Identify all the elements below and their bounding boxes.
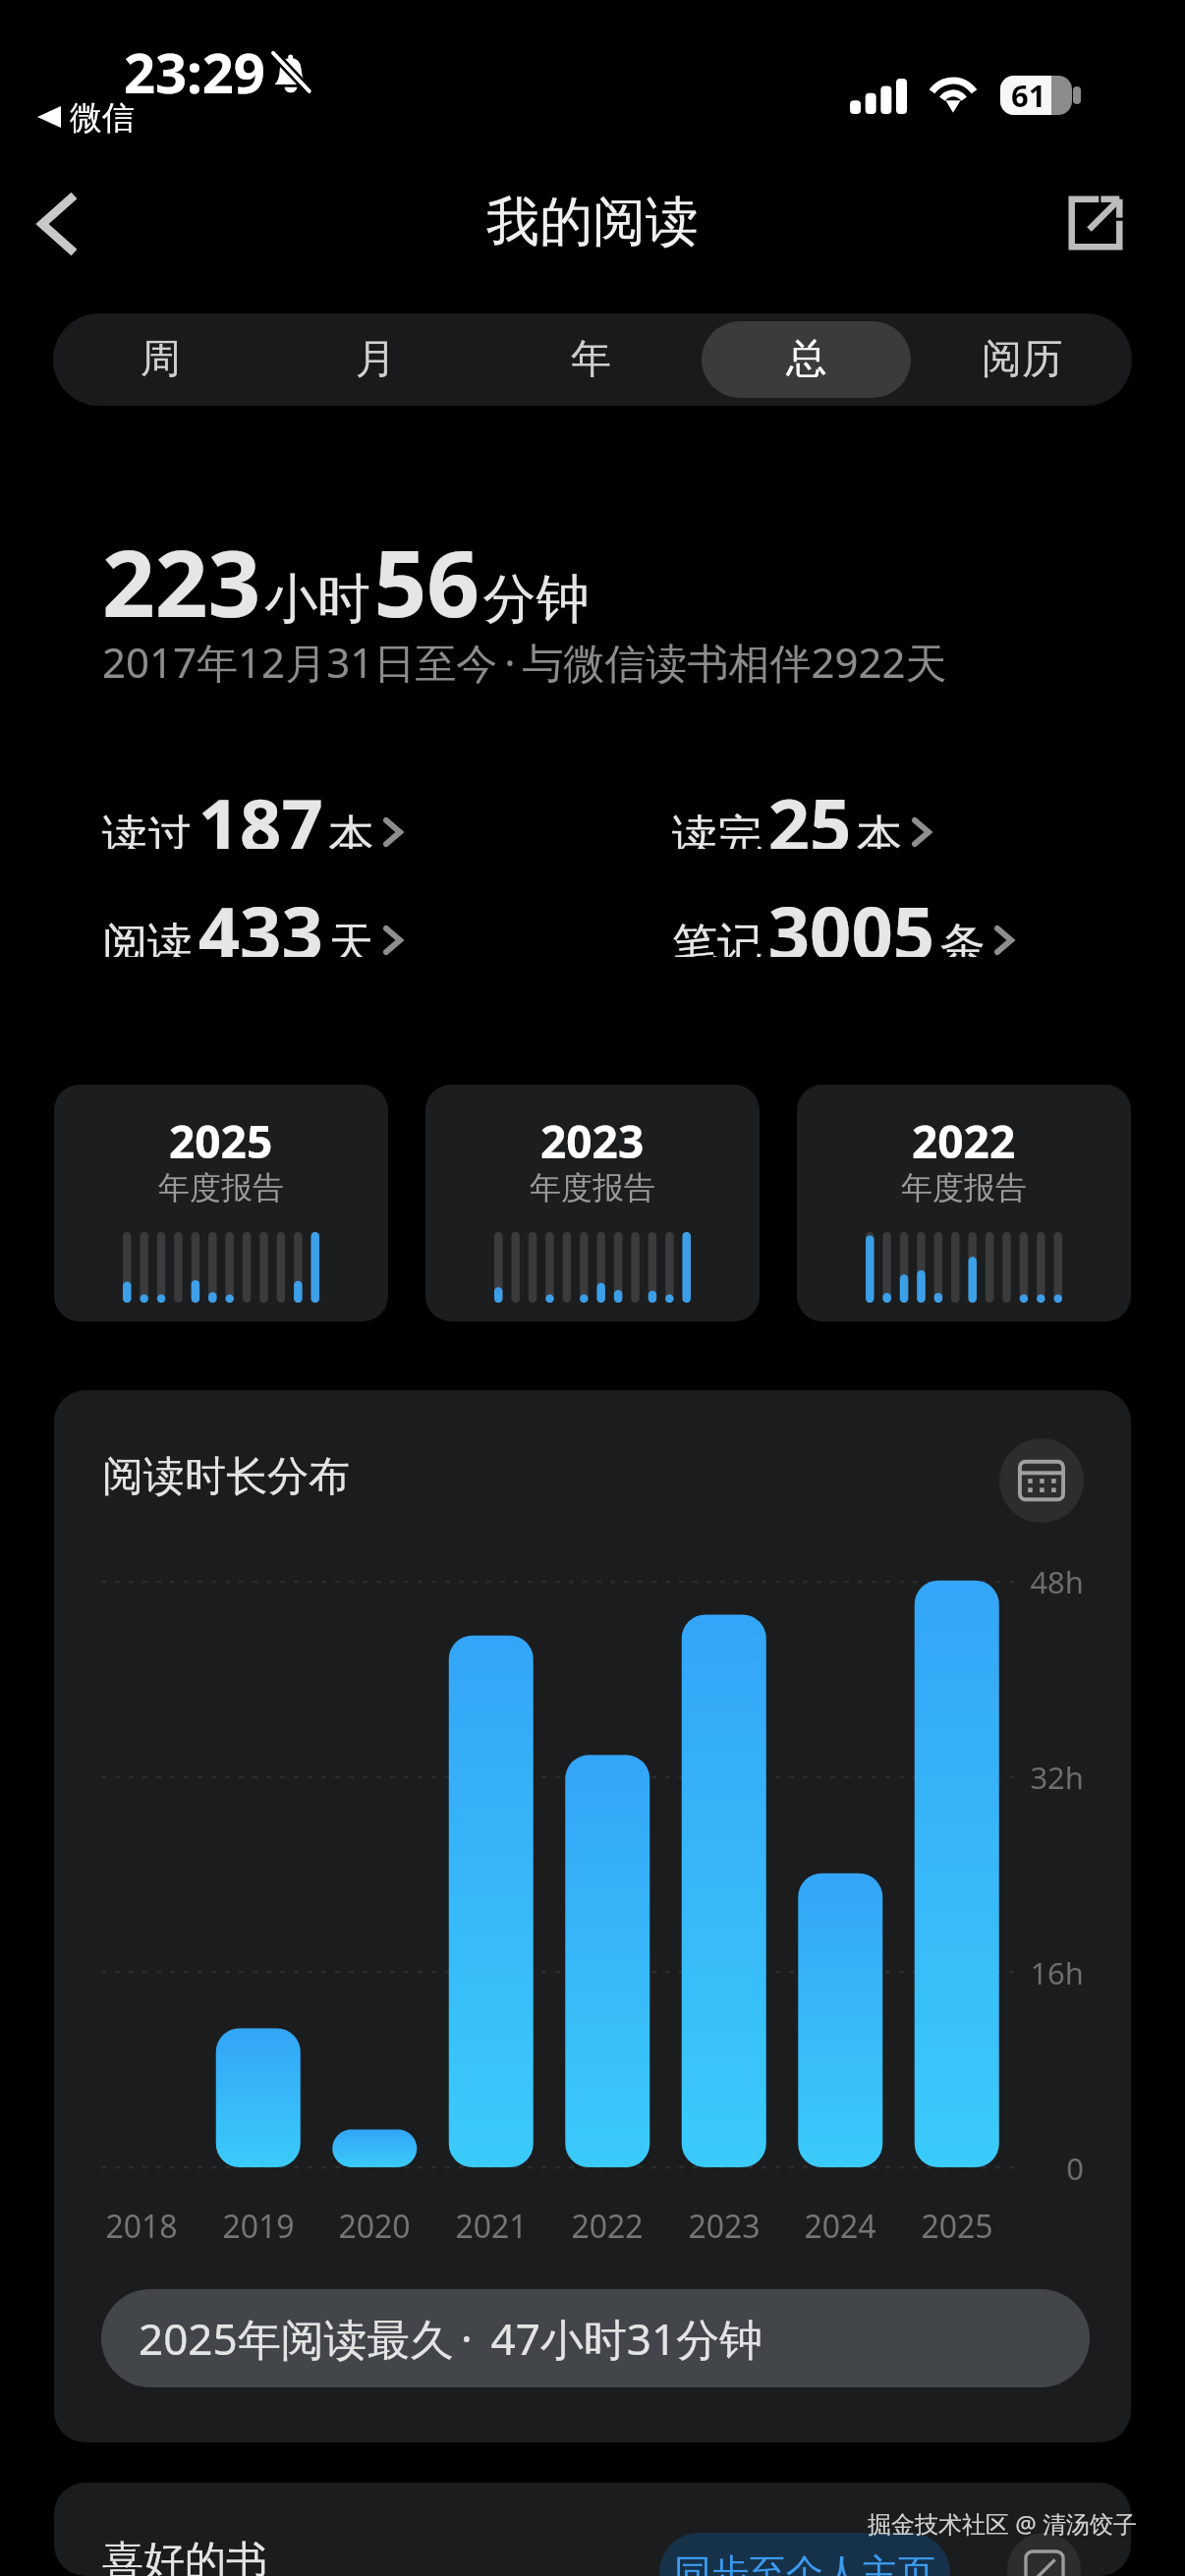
staticText: 2025 <box>899 2205 1015 2248</box>
staticText: 掘金技术社区 @ 清汤饺子 <box>868 2507 1138 2540</box>
button[interactable]: 2023 <box>425 1085 760 1321</box>
staticText: 年度报告 <box>158 1168 284 1207</box>
staticText: 2022 <box>912 1110 1016 1172</box>
button[interactable]: 月 <box>271 321 480 398</box>
staticText: 32h <box>995 1757 1084 1798</box>
staticText: 23:29 <box>124 34 265 109</box>
staticText: 总 <box>786 334 826 385</box>
staticText: 2021 <box>433 2205 549 2248</box>
staticText: 喜好的书 <box>102 2536 267 2576</box>
staticText: 笔记 3005 条 <box>672 882 986 957</box>
staticText: 周 <box>141 334 181 385</box>
button[interactable]: 读完 25 本 <box>672 774 931 849</box>
staticText: 48h <box>995 1561 1084 1602</box>
button[interactable]: 总 <box>702 321 911 398</box>
button[interactable]: 笔记 3005 条 <box>672 882 1014 957</box>
button[interactable]: Calendar <box>999 1438 1084 1523</box>
staticText: 0 <box>995 2148 1084 2189</box>
staticText: 2022 <box>549 2205 665 2248</box>
staticText: 阅读时长分布 <box>102 1451 350 1503</box>
button[interactable]: Share <box>1052 180 1139 266</box>
button[interactable]: 2025 <box>54 1085 388 1321</box>
staticText: 2025年阅读最久 · 47小时31分钟 <box>139 2309 763 2368</box>
staticText: 年度报告 <box>530 1168 655 1207</box>
staticText: 年 <box>571 334 611 385</box>
button[interactable]: Edit <box>1007 2533 1081 2576</box>
staticText: 月 <box>356 334 396 385</box>
staticText: 16h <box>995 1952 1084 1993</box>
staticText: 读完 25 本 <box>672 774 903 849</box>
staticText: 2023 <box>540 1110 645 1172</box>
staticText: 阅历 <box>982 334 1062 385</box>
button[interactable]: 2022 <box>797 1085 1131 1321</box>
staticText: 2025 <box>169 1110 273 1172</box>
staticText: 我的阅读 <box>486 189 699 255</box>
staticText: 2019 <box>200 2205 316 2248</box>
staticText: 微信 <box>70 97 135 139</box>
staticText: 2024 <box>782 2205 898 2248</box>
staticText: 阅读 433 天 <box>102 882 374 957</box>
staticText: 2020 <box>316 2205 432 2248</box>
button[interactable]: 阅读 433 天 <box>102 882 403 957</box>
staticText: 2017年12月31日至今 · 与微信读书相伴2922天 <box>102 634 947 690</box>
staticText: 同步至个人主页 <box>674 2549 935 2576</box>
button[interactable]: 同步至个人主页 <box>659 2533 950 2576</box>
staticText: 223 小时 56 分钟 <box>102 519 590 644</box>
button[interactable]: 2025年阅读最久 · 47小时31分钟 <box>101 2289 1090 2387</box>
button[interactable]: 阅历 <box>917 321 1126 398</box>
button[interactable]: Back <box>10 181 100 267</box>
staticText: 年度报告 <box>901 1168 1027 1207</box>
staticText: 2023 <box>666 2205 782 2248</box>
staticText: 读过 187 本 <box>102 774 374 849</box>
button[interactable]: 周 <box>56 321 265 398</box>
staticText: 2018 <box>84 2205 199 2248</box>
staticText: 61 <box>1011 75 1046 114</box>
button[interactable]: 读过 187 本 <box>102 774 403 849</box>
button[interactable]: 年 <box>486 321 696 398</box>
